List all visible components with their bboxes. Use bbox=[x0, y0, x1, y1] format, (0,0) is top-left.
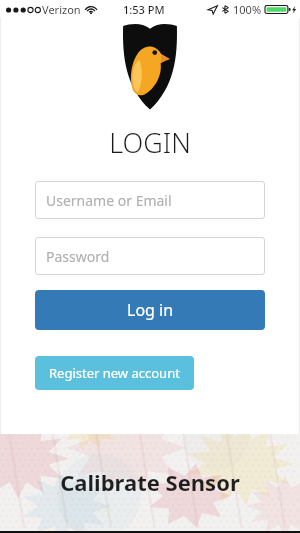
button[interactable]: Username or Email bbox=[35, 181, 265, 219]
staticText: 100% bbox=[233, 2, 262, 17]
button[interactable]: Calibrate Sensor bbox=[60, 467, 240, 497]
button[interactable]: Log in bbox=[35, 290, 265, 330]
button[interactable]: Register new account bbox=[35, 356, 194, 390]
staticText: Log in bbox=[127, 299, 174, 321]
button[interactable]: Password bbox=[35, 237, 265, 275]
staticText: LOGIN bbox=[109, 124, 191, 161]
staticText: Password bbox=[46, 247, 110, 266]
staticText: Verizon bbox=[42, 2, 81, 17]
staticText: 1:53 PM bbox=[123, 2, 165, 17]
staticText: Username or Email bbox=[46, 191, 172, 210]
staticText: Register new account bbox=[49, 364, 180, 382]
